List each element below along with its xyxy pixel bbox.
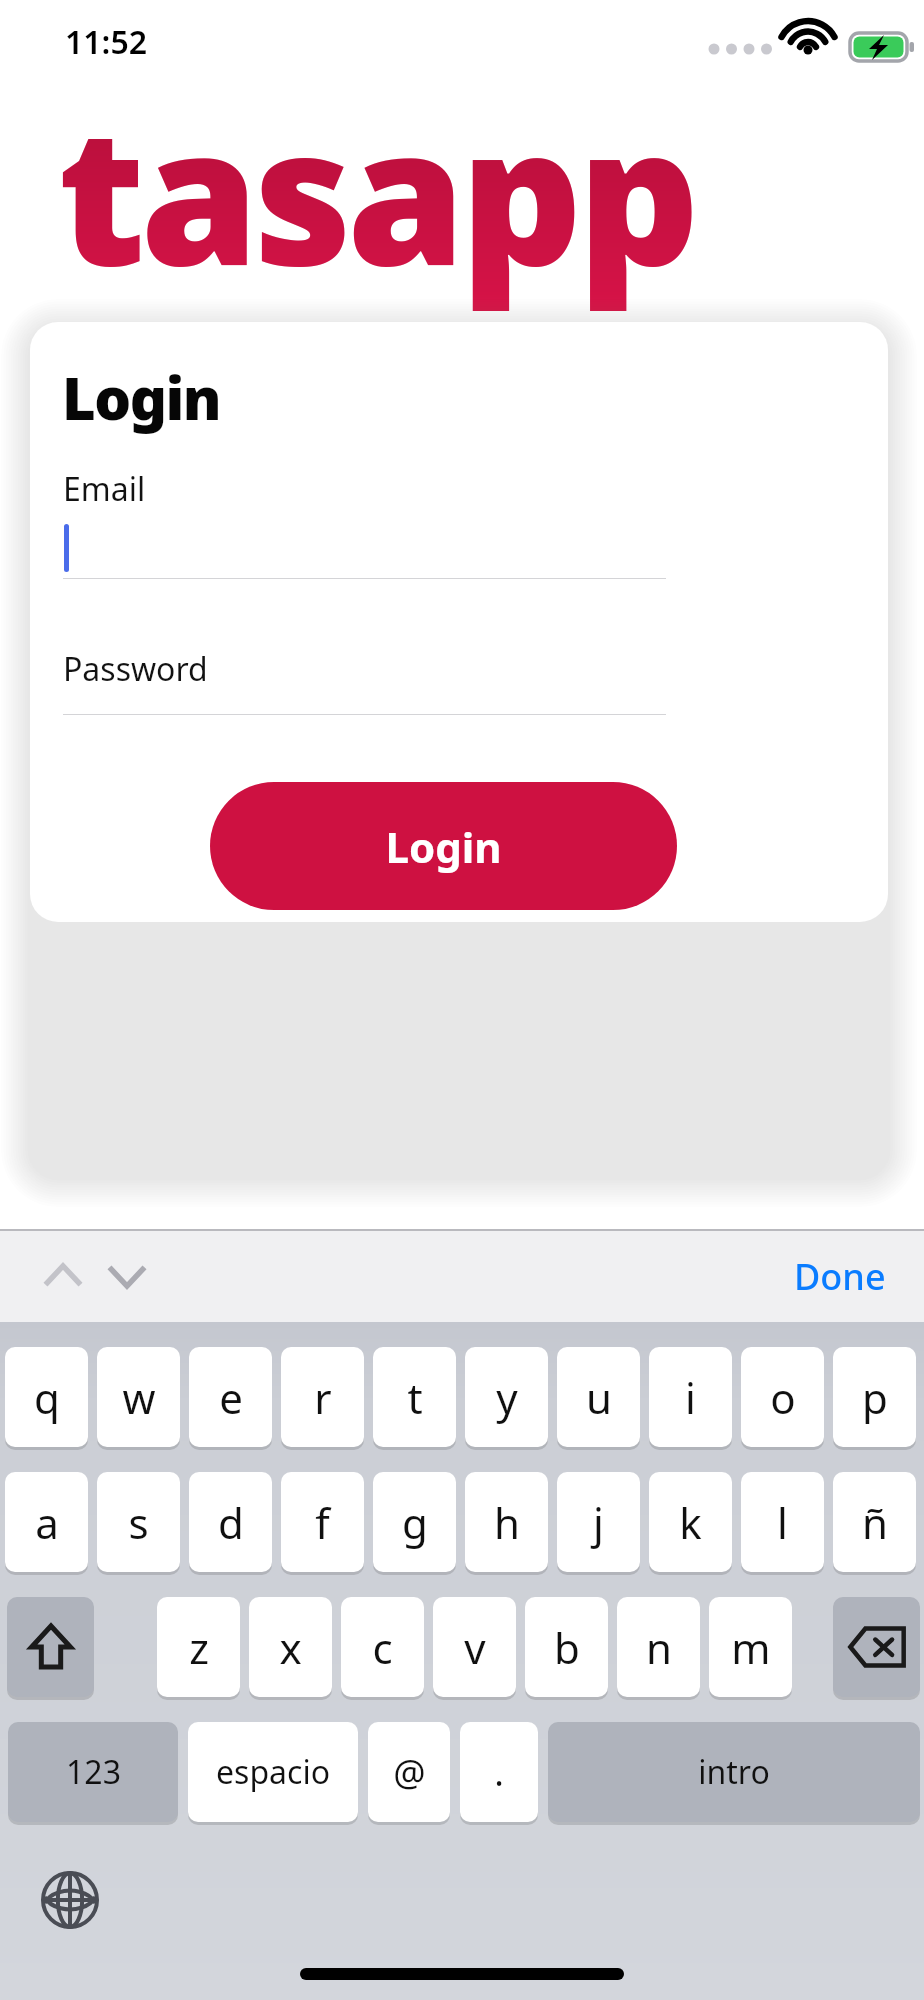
button[interactable]: f — [281, 1472, 364, 1572]
staticText: d — [218, 1494, 244, 1551]
button[interactable]: z — [157, 1597, 240, 1697]
button[interactable]: b — [525, 1597, 608, 1697]
button[interactable]: Previous field — [28, 1240, 98, 1312]
staticText: w — [122, 1369, 156, 1426]
staticText: q — [34, 1369, 60, 1426]
staticText: Done — [794, 1252, 886, 1301]
button[interactable]: o — [741, 1347, 824, 1447]
staticText: x — [279, 1619, 302, 1676]
staticText: k — [679, 1494, 702, 1551]
staticText: Email — [63, 467, 146, 511]
staticText: Login — [62, 358, 221, 437]
button[interactable]: i — [649, 1347, 732, 1447]
button[interactable]: j — [557, 1472, 640, 1572]
staticText: tasapp — [58, 62, 695, 321]
button[interactable]: v — [433, 1597, 516, 1697]
button[interactable]: r — [281, 1347, 364, 1447]
button[interactable]: x — [249, 1597, 332, 1697]
button[interactable]: ñ — [833, 1472, 916, 1572]
button[interactable]: p — [833, 1347, 916, 1447]
button[interactable]: u — [557, 1347, 640, 1447]
button[interactable]: Login — [210, 782, 677, 910]
staticText: y — [496, 1369, 518, 1426]
button[interactable]: Change keyboard language — [30, 1860, 110, 1940]
staticText: m — [731, 1619, 771, 1676]
button[interactable]: a — [5, 1472, 88, 1572]
staticText: z — [189, 1619, 209, 1676]
staticText: Login — [385, 818, 502, 875]
button[interactable]: t — [373, 1347, 456, 1447]
staticText: b — [554, 1619, 580, 1676]
staticText: p — [862, 1369, 888, 1426]
button[interactable]: c — [341, 1597, 424, 1697]
button[interactable]: Shift — [7, 1597, 94, 1697]
button[interactable]: y — [465, 1347, 548, 1447]
staticText: h — [494, 1494, 520, 1551]
staticText: 11:52 — [65, 20, 148, 64]
button[interactable]: q — [5, 1347, 88, 1447]
staticText: l — [777, 1494, 788, 1551]
staticText: . — [494, 1748, 504, 1797]
button[interactable]: @ — [368, 1722, 450, 1822]
staticText: e — [219, 1369, 243, 1426]
staticText: ñ — [862, 1494, 888, 1551]
button[interactable]: m — [709, 1597, 792, 1697]
button[interactable]: Done — [780, 1240, 900, 1312]
staticText: o — [770, 1369, 796, 1426]
staticText: c — [372, 1619, 393, 1676]
button[interactable]: s — [97, 1472, 180, 1572]
button[interactable]: espacio — [188, 1722, 358, 1822]
staticText: n — [646, 1619, 672, 1676]
button[interactable]: g — [373, 1472, 456, 1572]
button[interactable]: intro — [548, 1722, 920, 1822]
button[interactable]: Next field — [92, 1240, 162, 1312]
button[interactable]: 123 — [8, 1722, 178, 1822]
staticText: a — [35, 1494, 59, 1551]
staticText: @ — [393, 1748, 426, 1797]
staticText: u — [586, 1369, 612, 1426]
button[interactable]: Backspace — [833, 1597, 920, 1697]
staticText: t — [407, 1369, 423, 1426]
button[interactable]: k — [649, 1472, 732, 1572]
staticText: j — [593, 1494, 604, 1551]
staticText: s — [128, 1494, 149, 1551]
staticText: i — [685, 1369, 696, 1426]
button[interactable]: e — [189, 1347, 272, 1447]
staticText: g — [402, 1494, 428, 1551]
button[interactable]: Password — [48, 622, 668, 722]
button[interactable]: d — [189, 1472, 272, 1572]
staticText: 123 — [66, 1750, 121, 1794]
button[interactable]: Email — [48, 462, 668, 582]
button[interactable]: n — [617, 1597, 700, 1697]
staticText: r — [314, 1369, 332, 1426]
staticText: espacio — [216, 1750, 330, 1794]
staticText: Password — [63, 647, 208, 691]
button[interactable]: . — [460, 1722, 538, 1822]
button[interactable]: h — [465, 1472, 548, 1572]
staticText: f — [315, 1494, 330, 1551]
staticText: intro — [698, 1750, 770, 1794]
staticText: v — [464, 1619, 486, 1676]
button[interactable]: w — [97, 1347, 180, 1447]
button[interactable]: l — [741, 1472, 824, 1572]
